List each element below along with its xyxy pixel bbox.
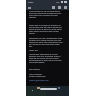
staticText: 10:41 [28,1,34,4]
staticText: Thank you. [29,49,39,51]
staticText: We sincerely appreciate all of your pati… [29,53,63,63]
staticText: Best regards, [29,68,41,70]
staticText: Depending on your configuration these up… [29,37,63,47]
staticText: We are writing to let you know about som… [29,10,63,18]
staticText: LTE [56,1,60,4]
button[interactable]: Back [27,5,32,10]
button[interactable]: Archive [50,5,56,10]
staticText: Please take a moment to review all of th… [29,24,63,34]
staticText: Avery Sandoval Product Operations [29,73,46,77]
button[interactable]: Delete [56,5,62,10]
staticText: support@example.com [29,79,49,81]
button[interactable]: Mark unread [62,5,68,10]
